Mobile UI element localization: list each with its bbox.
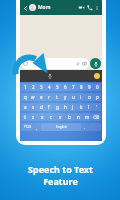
staticText: h [64,104,67,110]
staticText: 4 [48,84,51,90]
staticText: 6 [64,84,67,90]
button[interactable]: a [21,103,29,111]
staticText: v [59,114,62,120]
button[interactable]: q [21,93,29,101]
staticText: 3 [40,84,43,90]
button[interactable]: p [93,93,101,101]
staticText: English [56,125,67,129]
staticText: Mom [38,4,51,11]
button[interactable]: f [45,103,53,111]
button[interactable]: m [83,113,92,121]
staticText: 0 [96,84,99,90]
button[interactable]: Voice call [86,4,93,11]
button[interactable]: Emoji keyboard [33,123,41,131]
staticText: 7 [72,84,75,90]
button[interactable]: 2 [29,83,37,91]
button[interactable]: c [47,113,56,121]
button[interactable]: y [61,93,69,101]
button[interactable]: s [29,103,37,111]
button[interactable]: 9 [85,83,93,91]
staticText: r [48,94,50,100]
button[interactable]: ⌫ [92,113,101,121]
button[interactable]: Camera [82,61,87,66]
button[interactable]: 8 [77,83,85,91]
staticText: p [96,94,99,100]
staticText: d [40,104,43,110]
staticText: o [88,94,91,100]
button[interactable]: 4 [45,83,53,91]
staticText: l [88,104,90,110]
button[interactable]: w [29,93,37,101]
button[interactable]: e [37,93,45,101]
staticText: ⇧ [23,115,27,120]
button[interactable]: Back [22,5,28,11]
button[interactable]: ⇧ [21,113,29,121]
button[interactable]: Voice input [47,73,53,79]
button[interactable]: k [77,103,85,111]
button[interactable]: Enter [89,123,101,131]
staticText: ' [96,104,98,110]
staticText: b [68,114,71,120]
staticText: 2 [32,84,35,90]
staticText: . [84,125,86,130]
button[interactable]: u [69,93,77,101]
button[interactable]: . [81,123,89,131]
button[interactable]: Emoji [23,58,87,69]
staticText: Feature [43,175,78,187]
staticText: 8 [80,84,83,90]
button[interactable]: English [41,123,81,131]
button[interactable]: More options [94,5,100,11]
staticText: i [80,94,82,100]
button[interactable]: h [61,103,69,111]
button[interactable]: Attach [75,61,80,66]
button[interactable]: z [29,113,38,121]
button[interactable]: v [56,113,65,121]
button[interactable]: r [45,93,53,101]
button[interactable]: d [37,103,45,111]
button[interactable]: 7 [69,83,77,91]
button[interactable]: o [85,93,93,101]
staticText: k [80,104,83,110]
staticText: z [32,114,35,120]
button[interactable]: t [53,93,61,101]
staticText: f [48,104,50,110]
staticText: 9 [88,84,91,90]
button[interactable]: Voice message [90,58,101,69]
button[interactable]: n [74,113,83,121]
button[interactable]: x [38,113,47,121]
button[interactable]: Emoji [94,73,100,79]
staticText: n [77,114,80,120]
button[interactable]: l [85,103,93,111]
button[interactable]: j [69,103,77,111]
staticText: m [85,114,90,120]
staticText: ?123 [24,125,31,129]
staticText: Speech to Text [28,163,93,175]
button[interactable]: 6 [61,83,69,91]
button[interactable]: 5 [53,83,61,91]
button[interactable]: 3 [37,83,45,91]
staticText: c [50,114,53,120]
staticText: a [24,104,27,110]
button[interactable]: Contact photo [29,4,36,11]
staticText: u [72,94,75,100]
staticText: 1 [24,84,27,90]
button[interactable]: 1 [21,83,29,91]
staticText: g [56,104,59,110]
staticText: , [36,125,38,130]
staticText: y [64,94,67,100]
button[interactable]: Video call [78,4,85,11]
staticText: t [56,94,58,100]
button[interactable]: ' [93,103,101,111]
button[interactable]: b [65,113,74,121]
staticText: q [24,94,27,100]
button[interactable]: ?123 [21,123,33,131]
staticText: w [31,94,35,100]
button[interactable]: g [53,103,61,111]
button[interactable]: i [77,93,85,101]
staticText: s [32,104,35,110]
staticText: j [72,104,74,110]
staticText: ⌫ [93,115,100,120]
button[interactable]: Emoji [23,61,28,66]
button[interactable]: 0 [93,83,101,91]
staticText: e [40,94,43,100]
